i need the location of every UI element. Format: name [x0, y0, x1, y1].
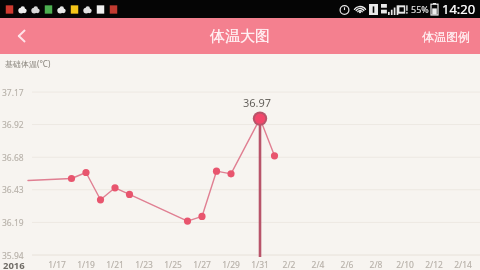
staticText: 1/23	[133, 259, 155, 270]
staticText: 基础体温(°C)	[5, 58, 51, 69]
staticText: 1/17	[46, 259, 68, 270]
staticText: 2/2	[278, 259, 300, 270]
staticText: 35.94	[2, 250, 24, 262]
staticText: 1/25	[162, 259, 184, 270]
staticText: 1/31	[249, 259, 271, 270]
staticText: 体温大图	[210, 27, 270, 46]
staticText: 体温图例	[422, 29, 470, 44]
staticText: 37.17	[2, 87, 24, 99]
button[interactable]: Back	[0, 18, 44, 54]
staticText: 1/27	[191, 259, 213, 270]
staticText: 2/8	[365, 259, 387, 270]
staticText: 2/14	[452, 259, 474, 270]
staticText: 14:20	[442, 0, 476, 18]
staticText: 36.68	[2, 152, 24, 164]
staticText: 2/4	[307, 259, 329, 270]
staticText: 36.43	[2, 184, 24, 196]
staticText: 55%	[411, 3, 429, 15]
staticText: 36.19	[2, 217, 24, 229]
staticText: 2/6	[336, 259, 358, 270]
staticText: 2/12	[423, 259, 445, 270]
staticText: 1/19	[75, 259, 97, 270]
staticText: 1/29	[220, 259, 242, 270]
staticText: 2016	[3, 259, 25, 270]
staticText: 1/21	[104, 259, 126, 270]
staticText: 36.92	[2, 119, 24, 131]
staticText: 2/10	[394, 259, 416, 270]
staticText: 36.97	[243, 95, 272, 110]
button[interactable]: 体温图例	[412, 18, 480, 54]
